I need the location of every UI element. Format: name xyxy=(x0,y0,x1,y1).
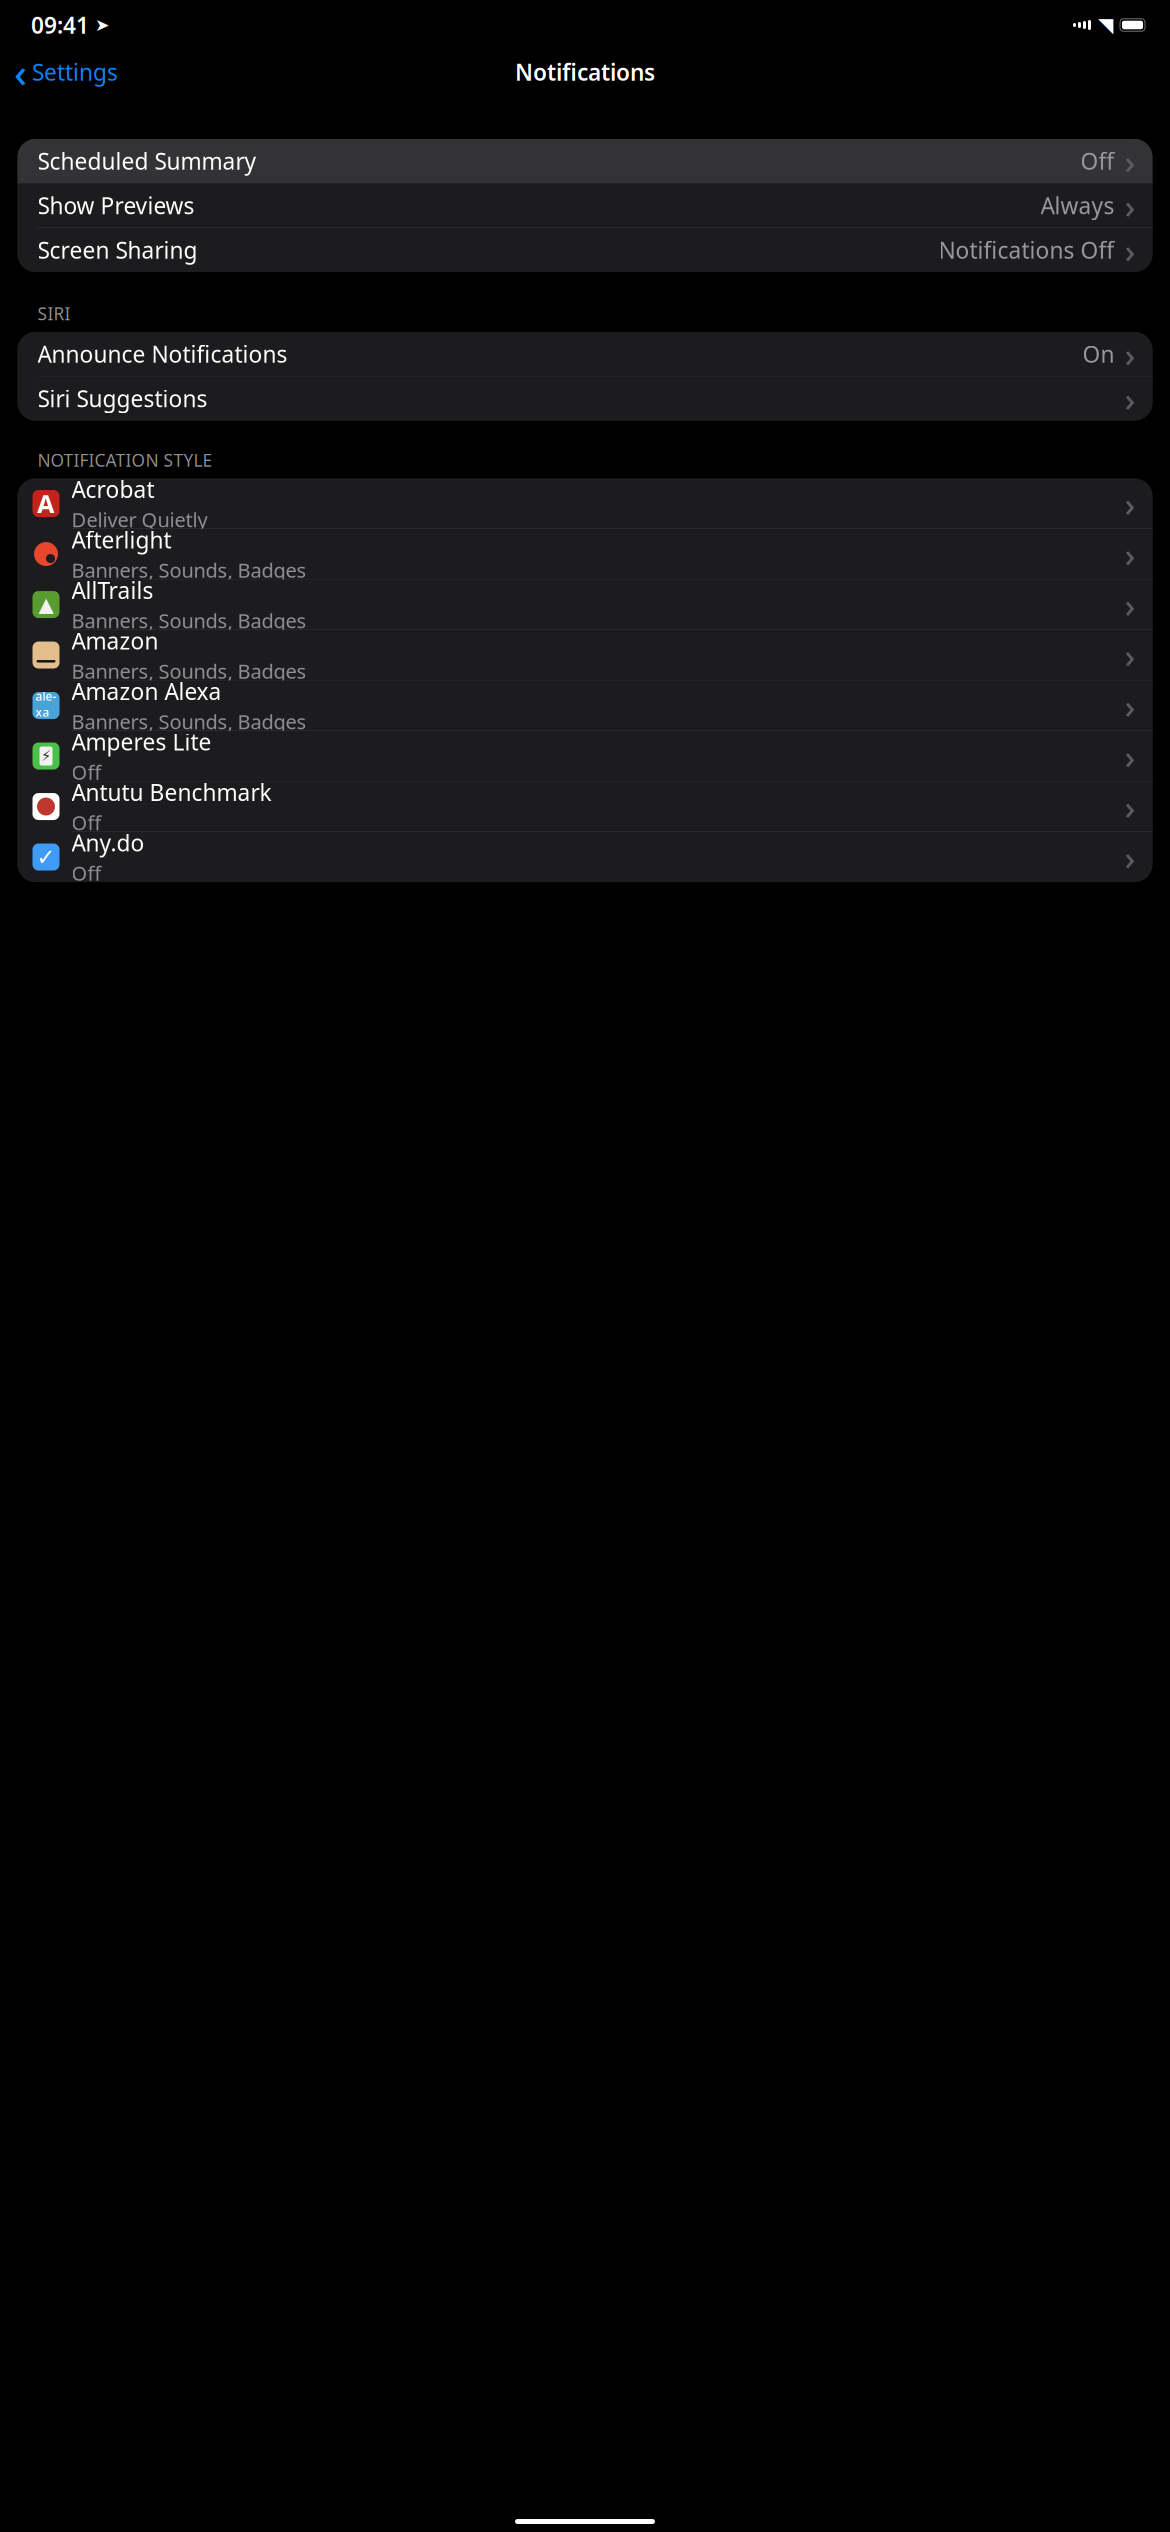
staticText: Amazon Alexa xyxy=(71,676,221,706)
staticText: › xyxy=(1124,835,1135,879)
staticText: NOTIFICATION STYLE xyxy=(37,448,212,471)
button[interactable]: alexa xyxy=(17,680,1152,730)
button[interactable]: ⚡︎ xyxy=(17,731,1152,781)
staticText: Afterlight xyxy=(71,525,171,555)
staticText: On xyxy=(1082,339,1114,369)
button[interactable]: Siri Suggestions xyxy=(17,376,1152,420)
staticText: ◥ xyxy=(1098,14,1113,36)
button[interactable]: A xyxy=(17,478,1152,528)
staticText: Notifications Off xyxy=(938,235,1114,265)
staticText: › xyxy=(1124,376,1135,421)
staticText: › xyxy=(1124,683,1135,728)
staticText: Acrobat xyxy=(71,474,154,504)
button[interactable]: Amazon xyxy=(17,630,1152,680)
staticText: › xyxy=(1124,734,1135,778)
staticText: › xyxy=(1124,582,1135,627)
button[interactable]: ‹ xyxy=(8,50,128,94)
staticText: › xyxy=(1124,633,1135,677)
staticText: › xyxy=(1124,332,1135,376)
button[interactable]: Screen Sharing xyxy=(17,228,1152,272)
staticText: ➤ xyxy=(95,15,110,35)
staticText: ⚡︎ xyxy=(41,748,51,764)
staticText: Deliver Quietly xyxy=(71,506,207,533)
staticText: Amperes Lite xyxy=(71,727,211,757)
staticText: A xyxy=(37,487,55,520)
staticText: Scheduled Summary xyxy=(37,146,256,176)
staticText: Always xyxy=(1040,190,1114,220)
staticText: Announce Notifications xyxy=(37,339,287,369)
staticText: Screen Sharing xyxy=(37,235,197,265)
staticText: Banners, Sounds, Badges xyxy=(71,658,306,684)
button[interactable]: Afterlight xyxy=(17,529,1152,579)
staticText: Off xyxy=(71,759,101,785)
button[interactable]: Show Previews xyxy=(17,183,1152,227)
button[interactable]: Antutu Benchmark xyxy=(17,781,1152,831)
staticText: › xyxy=(1124,183,1135,228)
staticText: Amazon xyxy=(71,626,158,656)
staticText: Antutu Benchmark xyxy=(71,777,271,807)
staticText: Show Previews xyxy=(37,190,194,220)
staticText: Off xyxy=(1080,146,1114,176)
staticText: Any.do xyxy=(71,828,144,858)
staticText: Notifications xyxy=(515,57,655,87)
staticText: Banners, Sounds, Badges xyxy=(71,557,306,583)
button[interactable]: Announce Notifications xyxy=(17,332,1152,376)
staticText: › xyxy=(1124,784,1135,829)
button[interactable]: ✓ xyxy=(17,832,1152,882)
staticText: ‹ xyxy=(14,45,27,98)
staticText: ▲ xyxy=(38,593,53,616)
staticText: Banners, Sounds, Badges xyxy=(71,708,306,735)
staticText: alexa xyxy=(35,688,56,720)
staticText: › xyxy=(1124,481,1135,526)
staticText: SIRI xyxy=(37,302,70,325)
staticText: Banners, Sounds, Badges xyxy=(71,607,306,634)
staticText: › xyxy=(1124,139,1135,183)
staticText: Off xyxy=(71,809,101,836)
staticText: 09:41 xyxy=(31,10,89,40)
staticText: AllTrails xyxy=(71,575,153,605)
staticText: ✓ xyxy=(36,844,55,870)
staticText: Siri Suggestions xyxy=(37,383,207,414)
staticText: › xyxy=(1124,532,1135,576)
staticText: Settings xyxy=(32,57,118,87)
staticText: Off xyxy=(71,860,101,886)
button[interactable]: ▲ xyxy=(17,579,1152,629)
button[interactable]: Scheduled Summary xyxy=(17,139,1152,183)
staticText: › xyxy=(1124,228,1135,272)
